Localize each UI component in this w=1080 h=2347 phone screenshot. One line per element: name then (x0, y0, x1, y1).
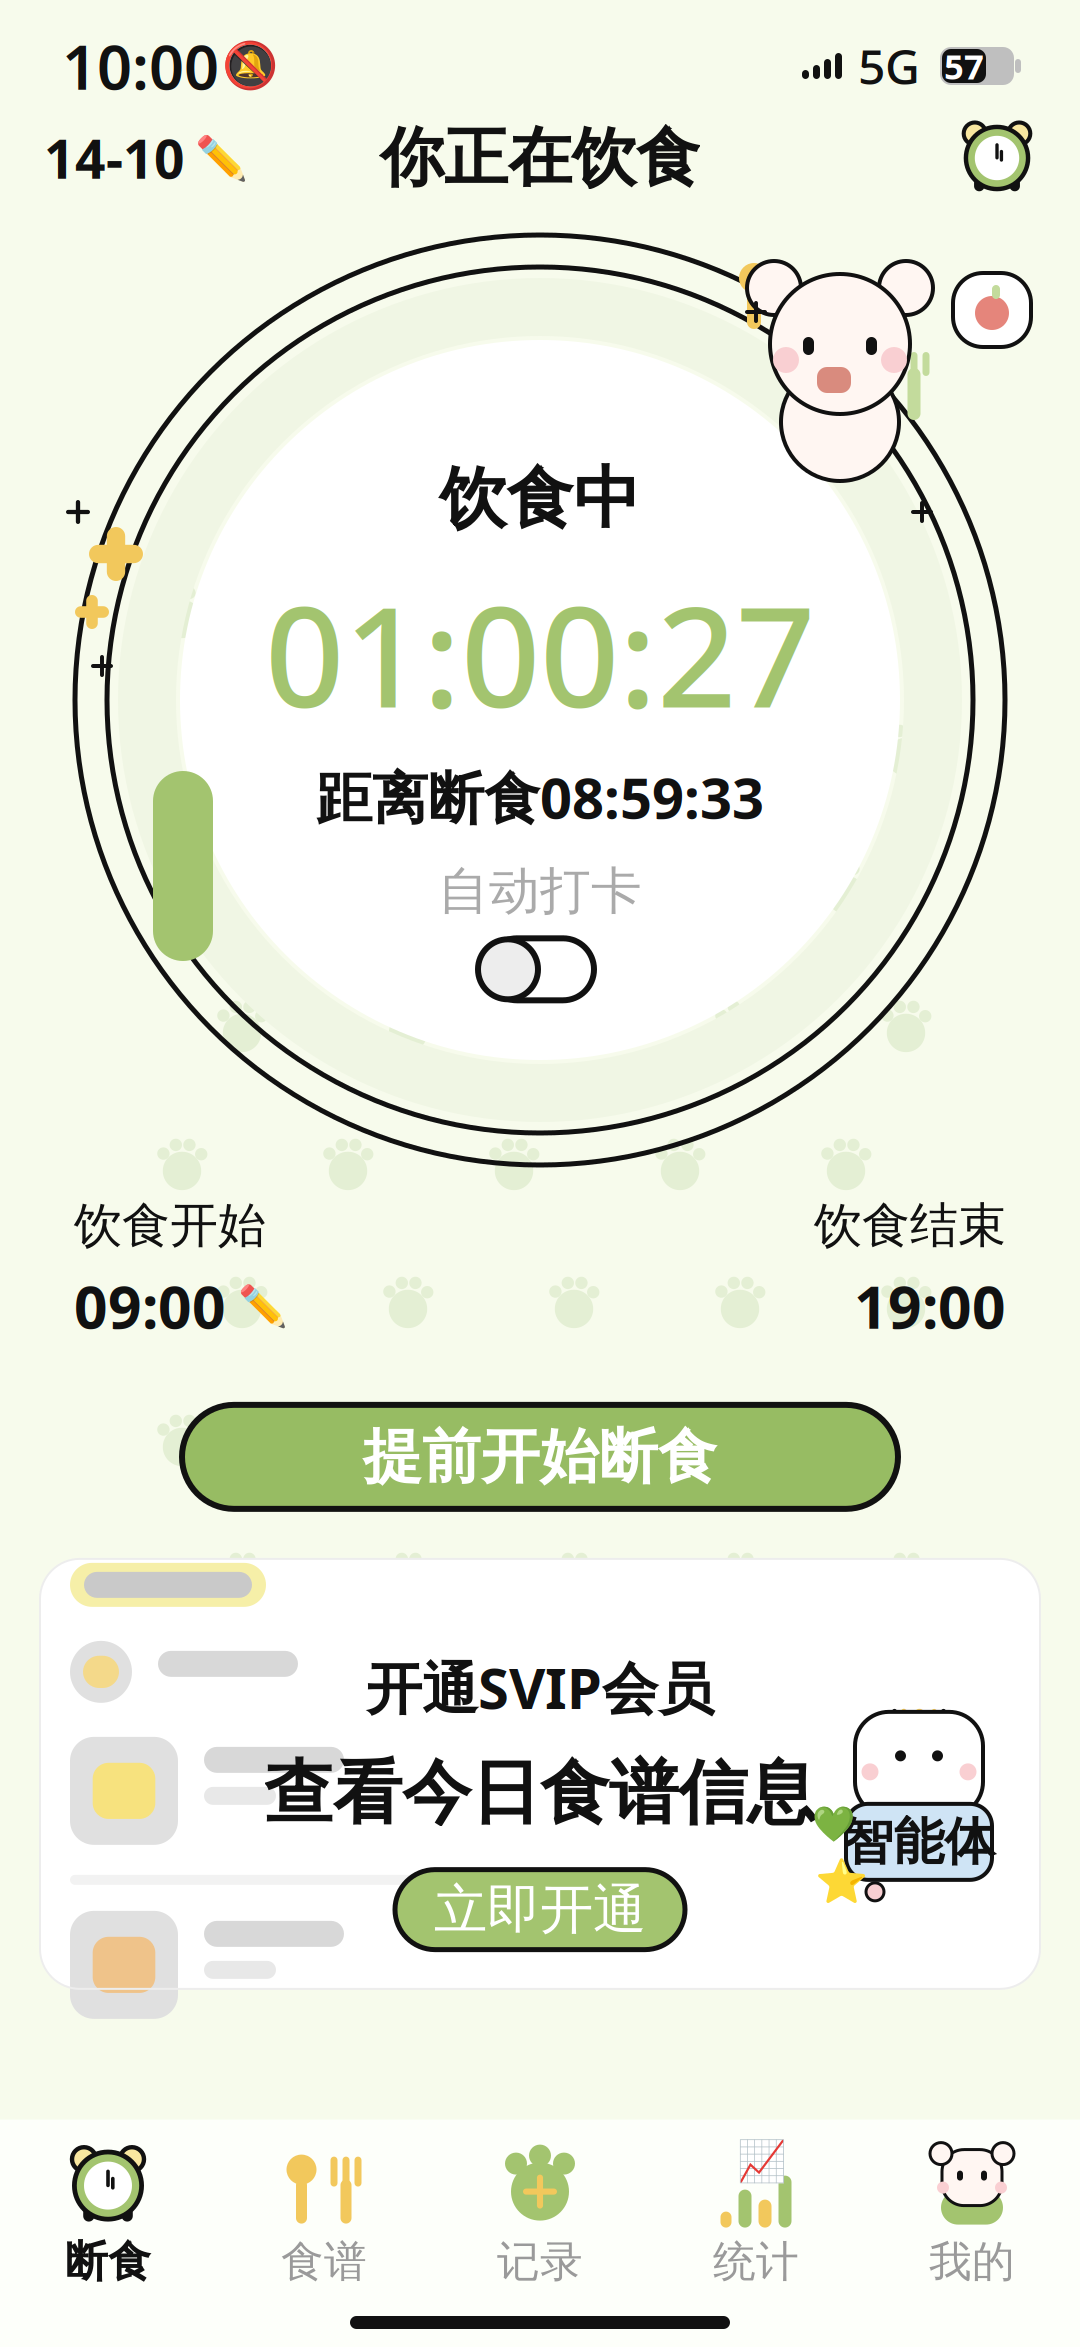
staticText: 10:00 (62, 25, 219, 107)
button[interactable]: 14-10 (38, 111, 254, 205)
button[interactable]: 食谱 (216, 2134, 432, 2298)
button[interactable]: 断食 (0, 2134, 216, 2298)
staticText: 智能体 (842, 1811, 995, 1873)
staticText: 饮食开始 (74, 1196, 266, 1255)
staticText: 断食 (65, 2236, 151, 2288)
staticText: 57 (944, 43, 984, 89)
staticText: 距离断食08:59:33 (316, 760, 764, 834)
button[interactable]: 记录 (432, 2134, 648, 2298)
staticText: 〰 (897, 1694, 941, 1734)
staticText: ✏️ (238, 1283, 288, 1329)
staticText: 09:00 (74, 1267, 226, 1345)
button[interactable]: 提前开始断食 (182, 1405, 898, 1509)
staticText: ⭐️ (814, 1857, 867, 1906)
staticText: 开通SVIP会员 (366, 1650, 714, 1724)
button[interactable]: 我的 (864, 2134, 1080, 2298)
staticText: 查看今日食谱信息 (264, 1750, 816, 1836)
staticText: ✏️ (195, 134, 248, 182)
staticText: 我的 (929, 2236, 1015, 2288)
button[interactable]: 闹钟提醒 (952, 113, 1042, 203)
staticText: 统计 (713, 2236, 799, 2288)
staticText: 记录 (497, 2236, 583, 2288)
staticText: 食谱 (281, 2236, 367, 2288)
button[interactable]: 📈 (648, 2134, 864, 2298)
button[interactable]: 立即开通 (395, 1870, 685, 1950)
staticText: 5G (858, 34, 920, 98)
staticText: 14-10 (44, 123, 185, 193)
staticText: 提前开始断食 (363, 1421, 717, 1493)
button[interactable]: 自动打卡开关 (480, 936, 600, 1002)
staticText: 01:00:27 (265, 562, 815, 746)
staticText: 💚 (811, 1804, 854, 1844)
staticText: 📈 (737, 2139, 787, 2184)
staticText: 立即开通 (434, 1877, 646, 1942)
staticText: 饮食结束 (814, 1196, 1006, 1255)
staticText: 自动打卡 (438, 860, 642, 922)
staticText: 你正在饮食 (380, 119, 700, 197)
button[interactable]: 饮食开始 (74, 1196, 288, 1345)
staticText: 🔕 (222, 40, 278, 92)
staticText: 19:00 (854, 1267, 1006, 1345)
staticText: 饮食中 (439, 458, 640, 540)
